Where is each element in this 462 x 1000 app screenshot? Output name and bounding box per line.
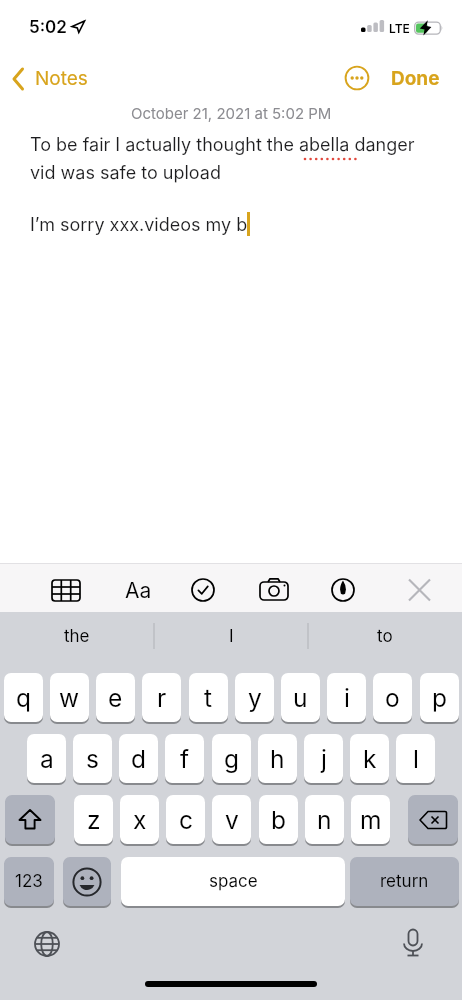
staticText: the xyxy=(64,626,90,647)
button[interactable]: c xyxy=(166,795,205,844)
button[interactable]: t xyxy=(189,673,228,722)
button[interactable]: q xyxy=(4,673,43,722)
staticText: d xyxy=(131,744,147,774)
button[interactable]: h xyxy=(258,734,297,783)
button[interactable]: w xyxy=(50,673,89,722)
button[interactable] xyxy=(50,578,82,603)
staticText: n xyxy=(317,805,332,835)
staticText: q xyxy=(16,683,32,713)
button[interactable]: x xyxy=(120,795,159,844)
button[interactable]: p xyxy=(420,673,459,722)
button[interactable] xyxy=(344,65,370,91)
staticText: s xyxy=(86,744,99,774)
staticText: r xyxy=(157,683,167,713)
staticText: g xyxy=(224,744,240,774)
staticText: Done xyxy=(391,67,440,90)
staticText: 123 xyxy=(15,871,43,892)
staticText: w xyxy=(59,683,80,713)
staticText: I’m sorry xxx.videos my b xyxy=(30,214,248,236)
staticText: return xyxy=(380,871,429,892)
staticText: To be fair I actually thought the abella… xyxy=(30,134,415,183)
button[interactable]: l xyxy=(396,734,435,783)
staticText: k xyxy=(363,744,377,774)
staticText: to xyxy=(377,626,393,647)
button[interactable] xyxy=(330,577,356,603)
button[interactable]: u xyxy=(281,673,320,722)
button[interactable]: o xyxy=(373,673,412,722)
staticText: I xyxy=(229,626,234,647)
button[interactable]: i xyxy=(327,673,366,722)
button[interactable]: n xyxy=(305,795,344,844)
staticText: o xyxy=(385,683,400,713)
staticText: j xyxy=(321,744,327,774)
button[interactable] xyxy=(407,578,432,602)
staticText: p xyxy=(432,683,448,713)
staticText: LTE xyxy=(389,21,410,33)
button[interactable]: k xyxy=(350,734,389,783)
button[interactable]: r xyxy=(142,673,181,722)
staticText: c xyxy=(179,805,193,835)
button[interactable]: g xyxy=(212,734,251,783)
button[interactable]: I xyxy=(154,618,308,654)
button[interactable]: f xyxy=(165,734,204,783)
staticText: z xyxy=(87,805,101,835)
button[interactable]: y xyxy=(235,673,274,722)
staticText: y xyxy=(248,683,262,713)
staticText: e xyxy=(108,683,123,713)
button[interactable]: return xyxy=(350,857,459,906)
button[interactable]: j xyxy=(304,734,343,783)
staticText: l xyxy=(413,744,419,774)
button[interactable]: b xyxy=(259,795,298,844)
button[interactable] xyxy=(63,857,111,906)
button[interactable]: s xyxy=(73,734,112,783)
button[interactable]: z xyxy=(74,795,113,844)
staticText: v xyxy=(225,805,239,835)
staticText: m xyxy=(360,805,382,835)
staticText: i xyxy=(344,683,350,713)
staticText: Notes xyxy=(35,67,88,90)
button[interactable]: v xyxy=(212,795,251,844)
button[interactable]: 123 xyxy=(4,857,54,906)
staticText: 5:02 xyxy=(29,17,67,35)
button[interactable]: Notes xyxy=(8,62,108,94)
staticText: b xyxy=(271,805,287,835)
button[interactable] xyxy=(5,795,55,844)
button[interactable] xyxy=(399,928,427,960)
button[interactable]: m xyxy=(351,795,390,844)
button[interactable]: Done xyxy=(391,62,441,94)
staticText: x xyxy=(133,805,147,835)
button[interactable]: to xyxy=(308,618,462,654)
button[interactable]: d xyxy=(119,734,158,783)
staticText: u xyxy=(293,683,308,713)
button[interactable] xyxy=(408,795,458,844)
staticText: a xyxy=(40,744,54,774)
button[interactable] xyxy=(190,577,216,603)
staticText: t xyxy=(204,683,213,713)
staticText: f xyxy=(180,744,190,774)
button[interactable]: space xyxy=(121,857,345,906)
button[interactable] xyxy=(33,930,61,958)
button[interactable] xyxy=(258,577,290,603)
button[interactable]: e xyxy=(96,673,135,722)
staticText: space xyxy=(209,871,258,892)
button[interactable]: a xyxy=(27,734,66,783)
button[interactable]: the xyxy=(0,618,154,654)
staticText: October 21, 2021 at 5:02 PM xyxy=(131,104,332,122)
button[interactable]: Aa xyxy=(118,577,158,603)
staticText: Aa xyxy=(125,578,152,603)
staticText: h xyxy=(270,744,285,774)
